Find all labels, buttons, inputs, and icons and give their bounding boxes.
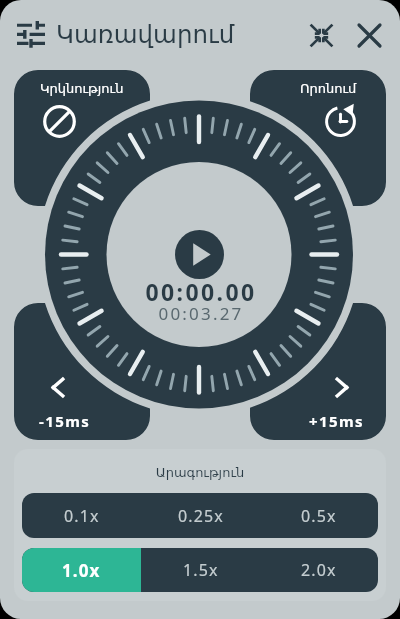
staticText: 2.0x: [301, 559, 337, 581]
staticText: 1.0x: [62, 559, 101, 582]
button[interactable]: 2.0x: [260, 548, 378, 592]
button[interactable]: 0.5x: [260, 493, 378, 538]
button[interactable]: 1.0x: [22, 548, 141, 592]
staticText: Կրկնություն: [40, 81, 124, 96]
staticText: Որոնում: [300, 81, 357, 96]
button[interactable]: -15ms: [14, 303, 150, 440]
button[interactable]: Play: [175, 230, 224, 279]
button[interactable]: Կրկնություն: [14, 70, 150, 206]
staticText: 0.1x: [64, 505, 100, 527]
button[interactable]: Collapse: [300, 15, 342, 55]
staticText: 00:03.27: [1, 302, 400, 325]
button[interactable]: Որոնում: [250, 70, 386, 206]
staticText: 1.5x: [183, 559, 219, 581]
staticText: -15ms: [39, 411, 91, 431]
button[interactable]: 0.1x: [22, 493, 141, 538]
staticText: 0.5x: [301, 505, 337, 527]
button[interactable]: Close: [348, 15, 390, 55]
staticText: Կառավարում: [56, 20, 235, 49]
staticText: +15ms: [309, 411, 364, 431]
staticText: 00:00.00: [1, 276, 400, 307]
button[interactable]: 0.25x: [141, 493, 260, 538]
staticText: 0.25x: [178, 505, 224, 527]
staticText: Արագություն: [14, 465, 386, 480]
button[interactable]: 1.5x: [141, 548, 260, 592]
button[interactable]: Settings: [6, 13, 56, 57]
other: Repeat off: [43, 105, 76, 138]
other: Seek: [324, 105, 357, 138]
button[interactable]: +15ms: [250, 303, 386, 440]
